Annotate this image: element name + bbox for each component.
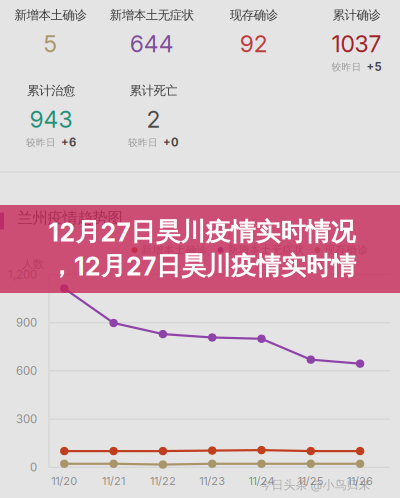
button[interactable]: 累计死亡 bbox=[103, 76, 203, 152]
staticText: 新增本土确诊 bbox=[14, 7, 86, 23]
staticText: 0 bbox=[30, 460, 37, 474]
staticText: 11/22 bbox=[150, 474, 176, 488]
staticText: 300 bbox=[16, 412, 37, 426]
staticText: 现存确诊 bbox=[324, 243, 368, 257]
staticText: 12月27日昊川疫情实时情况 bbox=[48, 216, 355, 248]
staticText: 11/21 bbox=[102, 474, 125, 488]
staticText: 11/25 bbox=[298, 474, 324, 488]
staticText: 累计治愈 bbox=[27, 83, 75, 98]
staticText: 新增本土无症状 bbox=[110, 7, 194, 23]
staticText: 2 bbox=[146, 106, 160, 133]
staticText: 累计确诊 bbox=[332, 7, 380, 23]
staticText: 累计死亡 bbox=[129, 83, 177, 98]
button[interactable]: 累计治愈 bbox=[1, 76, 101, 152]
button[interactable]: 累计确诊 bbox=[312, 0, 400, 76]
staticText: 11/20 bbox=[51, 474, 77, 488]
staticText: 较昨日 bbox=[26, 136, 56, 149]
staticText: 900 bbox=[16, 316, 37, 330]
staticText: 92 bbox=[240, 30, 268, 58]
staticText: 较昨日 bbox=[331, 61, 361, 73]
staticText: 1037 bbox=[331, 30, 381, 58]
staticText: 1,200 bbox=[8, 268, 37, 281]
staticText: 644 bbox=[130, 30, 174, 58]
staticText: 今日头条 @小鸟归来 bbox=[259, 477, 370, 492]
staticText: +0 bbox=[163, 136, 179, 149]
staticText: 新增本土无症状 bbox=[227, 243, 304, 257]
button[interactable]: 现存确诊 bbox=[206, 0, 302, 76]
staticText: +6 bbox=[61, 136, 76, 149]
staticText: 兰州疫情趋势图 bbox=[17, 208, 122, 227]
staticText: 11/24 bbox=[248, 474, 274, 488]
staticText: +5 bbox=[366, 60, 381, 74]
staticText: 11/26 bbox=[347, 474, 373, 488]
staticText: ，12月27日昊川疫情实时情 bbox=[49, 250, 356, 282]
button[interactable]: 新增本土无症状 bbox=[102, 0, 202, 76]
staticText: 现存确诊 bbox=[230, 7, 278, 23]
button[interactable]: 新增本土确诊 bbox=[0, 0, 100, 76]
staticText: 人数 bbox=[22, 257, 44, 271]
staticText: 600 bbox=[16, 364, 37, 378]
staticText: 较昨日 bbox=[128, 136, 158, 149]
staticText: 943 bbox=[29, 106, 72, 133]
staticText: 5 bbox=[43, 30, 57, 58]
staticText: 新增本土确诊 bbox=[141, 243, 207, 257]
staticText: 11/23 bbox=[199, 474, 225, 488]
